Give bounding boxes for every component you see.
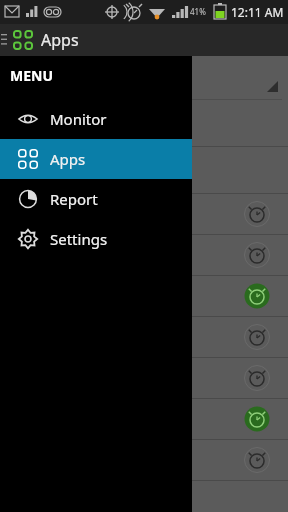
button[interactable]: Open navigation drawer (0, 24, 8, 56)
button[interactable]: Alarm toggle (0, 194, 288, 234)
button[interactable]: Alarm toggle (0, 235, 288, 275)
button[interactable]: Alarm toggle (0, 317, 288, 357)
staticText: Set Web (77, 115, 123, 131)
button[interactable]: Apps (0, 139, 192, 179)
staticText: Monitor (50, 109, 107, 129)
staticText: Choose when to prevent (12, 69, 161, 87)
staticText: Report (50, 189, 98, 209)
other: Alarm toggle (244, 365, 270, 391)
button[interactable]: Monitor (0, 99, 192, 139)
other: Alarm toggle (244, 324, 270, 350)
button[interactable]: Alarm toggle (0, 399, 288, 439)
button[interactable]: Report (0, 179, 192, 219)
button[interactable]: Settings (0, 219, 192, 259)
button[interactable]: Alarm toggle (0, 358, 288, 398)
staticText: 41% (190, 6, 206, 17)
button[interactable]: Alarm toggle (0, 276, 288, 316)
staticText: Apps (50, 149, 86, 169)
other: Alarm toggle (244, 406, 270, 432)
other: Alarm toggle (244, 201, 270, 227)
button[interactable]: Set Web (10, 108, 190, 138)
other: Alarm toggle (244, 447, 270, 473)
staticText: Apps (41, 29, 79, 51)
button[interactable]: Alarm toggle (0, 440, 288, 480)
other: Alarm toggle (244, 242, 270, 268)
staticText: 12:11 AM (231, 4, 284, 20)
staticText: Settings (50, 229, 108, 249)
other: Alarm toggle (244, 283, 270, 309)
staticText: MENU (10, 66, 54, 85)
